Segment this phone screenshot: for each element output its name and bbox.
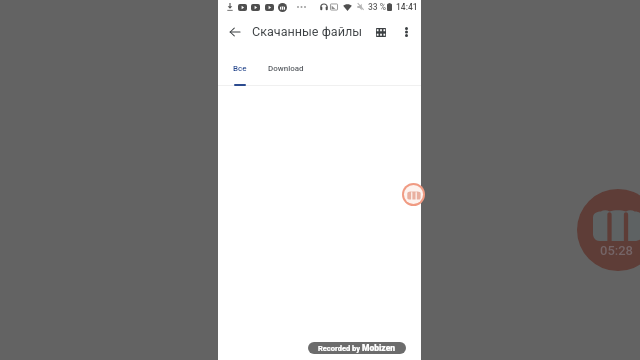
- staticText: Recorded by: [318, 344, 362, 353]
- staticText: Download: [268, 64, 304, 73]
- button[interactable]: Recorded by Mobizen: [308, 342, 406, 354]
- staticText: Скачанные файлы: [252, 24, 362, 39]
- button[interactable]: Switch to grid view: [368, 19, 394, 45]
- button[interactable]: More options: [393, 19, 419, 45]
- button[interactable]: Download: [261, 51, 311, 86]
- staticText: Mobizen: [362, 343, 396, 353]
- staticText: 05:28: [600, 243, 633, 258]
- staticText: 14:41: [396, 2, 418, 12]
- staticText: Все: [233, 64, 247, 73]
- button[interactable]: Back: [222, 19, 248, 45]
- staticText: 33 %: [368, 2, 387, 12]
- button[interactable]: Все: [223, 51, 257, 86]
